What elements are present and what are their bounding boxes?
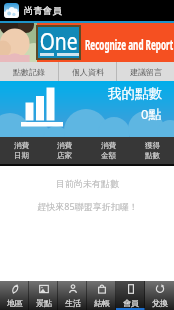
staticText: 景點: [36, 298, 52, 308]
other: 結帳: [96, 283, 108, 295]
staticText: 建議留言: [130, 67, 162, 77]
button[interactable]: 結帳: [87, 281, 116, 310]
staticText: 消費 金額: [101, 141, 116, 161]
button[interactable]: 景點: [29, 281, 58, 310]
button[interactable]: 建議留言: [117, 62, 174, 81]
other: 會員: [125, 283, 137, 295]
button[interactable]: 會員: [116, 281, 145, 310]
other: 地區: [9, 283, 21, 295]
staticText: 獲得 點數: [145, 141, 160, 161]
staticText: One: [40, 25, 78, 56]
staticText: 會員: [123, 298, 139, 308]
staticText: 地區: [7, 298, 23, 308]
staticText: 我的點數: [108, 85, 162, 102]
button[interactable]: 點數記錄: [0, 62, 58, 81]
staticText: Recognize and Report: [85, 35, 173, 54]
other: 景點: [38, 283, 50, 295]
other: 生活: [67, 283, 79, 295]
staticText: 尚青會員: [24, 5, 62, 17]
staticText: 生活: [65, 298, 81, 308]
staticText: 目前尚未有點數: [56, 178, 119, 189]
button[interactable]: 個人資料: [59, 62, 116, 81]
staticText: 消費 日期: [14, 141, 29, 161]
staticText: 消費 店家: [57, 141, 72, 161]
staticText: 0點: [141, 105, 162, 123]
staticText: 點數記錄: [13, 67, 45, 77]
staticText: 兌換: [152, 298, 168, 308]
staticText: 結帳: [94, 298, 110, 308]
other: 兌換: [154, 283, 166, 295]
staticText: 個人資料: [72, 67, 104, 77]
button[interactable]: 地區: [0, 281, 29, 310]
button[interactable]: 生活: [58, 281, 87, 310]
staticText: 趕快來85聯盟享折扣囉！: [37, 200, 138, 212]
button[interactable]: 兌換: [145, 281, 174, 310]
